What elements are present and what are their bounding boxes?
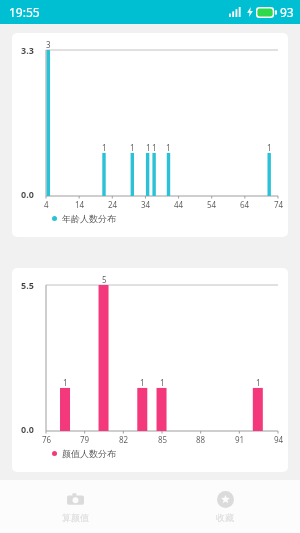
staticText: 64 xyxy=(240,199,250,210)
staticText: 44 xyxy=(174,199,184,210)
staticText: 年龄人数分布 xyxy=(62,213,116,224)
staticText: 5.5 xyxy=(21,279,34,291)
staticText: 79 xyxy=(80,434,90,445)
staticText: 1 xyxy=(130,142,135,153)
button[interactable]: 收藏 xyxy=(150,480,300,533)
staticText: 1 xyxy=(256,377,261,388)
staticText: 算颜值 xyxy=(62,512,89,523)
button[interactable]: 5.5 xyxy=(12,268,288,472)
staticText: 颜值人数分布 xyxy=(62,448,116,459)
staticText: 82 xyxy=(119,434,129,445)
staticText: 19:55 xyxy=(9,4,40,20)
staticText: 3.3 xyxy=(21,44,34,56)
button[interactable]: 3.3 xyxy=(12,33,288,237)
staticText: 74 xyxy=(274,199,284,210)
staticText: 85 xyxy=(158,434,168,445)
staticText: 94 xyxy=(274,434,284,445)
staticText: 1 xyxy=(102,142,107,153)
staticText: 24 xyxy=(108,199,118,210)
staticText: 54 xyxy=(207,199,217,210)
staticText: 0.0 xyxy=(21,423,34,435)
staticText: 3 xyxy=(46,39,51,50)
staticText: 0.0 xyxy=(21,188,34,200)
staticText: 14 xyxy=(75,199,85,210)
staticText: 1 xyxy=(160,377,165,388)
staticText: 34 xyxy=(141,199,151,210)
staticText: 1 xyxy=(267,142,272,153)
staticText: 1 xyxy=(63,377,68,388)
staticText: 76 xyxy=(42,434,52,445)
staticText: 88 xyxy=(196,434,206,445)
staticText: 91 xyxy=(235,434,245,445)
staticText: 93 xyxy=(280,4,294,20)
button[interactable]: 算颜值 xyxy=(0,480,150,533)
staticText: 1 xyxy=(146,142,151,153)
staticText: 5 xyxy=(102,274,107,285)
staticText: 1 xyxy=(140,377,145,388)
staticText: 4 xyxy=(44,199,49,210)
staticText: 1 xyxy=(152,142,157,153)
staticText: 1 xyxy=(166,142,171,153)
staticText: 收藏 xyxy=(216,512,234,523)
